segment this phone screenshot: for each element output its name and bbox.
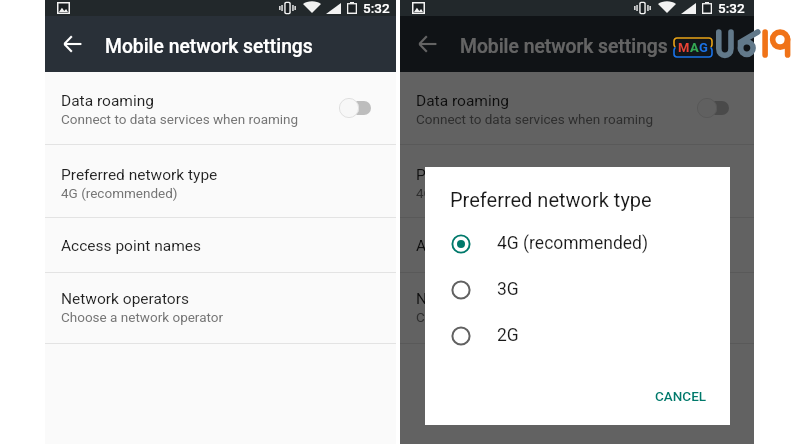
button[interactable]: Data roaming xyxy=(400,72,754,145)
button[interactable]: 2G xyxy=(441,313,714,358)
staticText: Access point names xyxy=(416,237,556,255)
staticText: CANCEL xyxy=(655,388,707,404)
staticText: Mobile network settings xyxy=(105,35,313,58)
button[interactable]: Back xyxy=(413,30,441,58)
staticText: 4G (recommended) xyxy=(497,233,649,254)
staticText: 4G (recommended) xyxy=(416,185,533,201)
staticText: 5:32 xyxy=(718,0,745,16)
staticText: Choose a network operator xyxy=(416,309,579,325)
button[interactable]: Data roaming xyxy=(45,72,396,145)
staticText: 2G xyxy=(497,325,519,346)
staticText: M xyxy=(678,40,690,55)
button[interactable]: Preferred network type xyxy=(400,145,754,218)
button[interactable]: Network operators xyxy=(45,273,396,344)
staticText: Choose a network operator xyxy=(61,309,224,325)
button[interactable]: Data roaming toggle xyxy=(697,98,730,118)
staticText: 5:32 xyxy=(363,0,390,16)
button[interactable]: Preferred network type xyxy=(45,145,396,218)
staticText: Data roaming xyxy=(416,92,509,110)
staticText: Data roaming xyxy=(61,92,154,110)
button[interactable]: CANCEL xyxy=(647,382,715,410)
button[interactable]: Access point names xyxy=(45,218,396,273)
staticText: Mobile network settings xyxy=(460,35,668,58)
staticText: G xyxy=(699,40,708,55)
staticText: Preferred network type xyxy=(450,188,652,211)
staticText: Access point names xyxy=(61,237,201,255)
staticText: Preferred network type xyxy=(416,166,573,184)
button[interactable]: Network operators xyxy=(400,273,754,344)
staticText: Connect to data services when roaming xyxy=(416,111,654,127)
staticText: Network operators xyxy=(416,290,544,308)
staticText: 4G (recommended) xyxy=(61,185,178,201)
button[interactable]: 4G (recommended) xyxy=(441,221,714,266)
staticText: Preferred network type xyxy=(61,166,218,184)
button[interactable]: 3G xyxy=(441,267,714,312)
staticText: Connect to data services when roaming xyxy=(61,111,299,127)
button[interactable]: Access point names xyxy=(400,218,754,273)
button[interactable]: Back xyxy=(58,30,86,58)
staticText: 3G xyxy=(497,279,519,300)
button[interactable]: Data roaming toggle xyxy=(339,98,372,118)
staticText: A xyxy=(690,40,699,55)
staticText: Network operators xyxy=(61,290,189,308)
